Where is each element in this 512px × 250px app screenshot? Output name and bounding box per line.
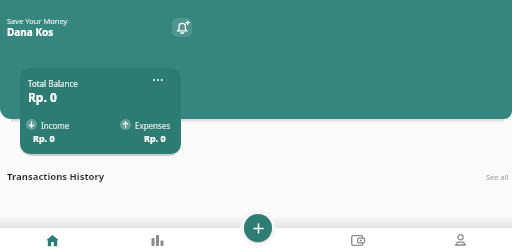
button[interactable]: See all [486, 172, 509, 182]
staticText: Save Your Money [7, 16, 68, 26]
staticText: Rp. 0 [33, 132, 55, 144]
button[interactable]: Total Balance [20, 68, 181, 154]
staticText: Rp. 0 [28, 89, 57, 105]
staticText: Transactions History [7, 170, 105, 183]
button[interactable] [448, 230, 473, 250]
staticText: Expenses [135, 120, 171, 131]
staticText: Dana Kos [7, 25, 54, 39]
button[interactable] [172, 18, 192, 37]
staticText: Total Balance [28, 78, 78, 89]
button[interactable] [40, 230, 65, 250]
staticText: Income [41, 120, 70, 131]
staticText: Rp. 0 [144, 132, 166, 144]
button[interactable] [345, 230, 370, 250]
button[interactable] [145, 230, 170, 250]
button[interactable] [244, 214, 272, 242]
